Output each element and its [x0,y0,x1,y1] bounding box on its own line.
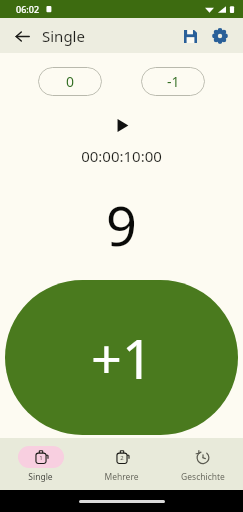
button[interactable]: Play [109,112,135,138]
staticText: 1 [39,454,43,462]
staticText: 00:00:10:00 [81,146,162,166]
staticText: Single [28,471,53,483]
staticText: 2 [120,454,124,462]
staticText: 0 [66,72,75,91]
button[interactable]: 0 [38,67,102,96]
button[interactable]: 2 [81,442,162,487]
button[interactable]: Settings [205,21,235,51]
button[interactable]: Geschichte [162,442,243,487]
button[interactable]: 1 [0,442,81,487]
staticText: Geschichte [181,471,225,483]
staticText: +1 [91,321,153,395]
staticText: 9 [106,188,137,262]
staticText: -1 [167,72,180,91]
staticText: 06:02 [16,3,40,15]
button[interactable]: Save [175,21,205,51]
button[interactable]: +1 [5,280,238,435]
button[interactable]: Back [8,22,36,50]
staticText: Single [42,26,85,46]
button[interactable]: -1 [141,67,205,96]
staticText: Mehrere [104,471,139,483]
